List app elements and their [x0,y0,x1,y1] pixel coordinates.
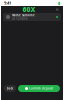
staticText: ▮ [58,1,60,5]
staticText: 60X [22,5,35,14]
staticText: 9:41 [4,0,11,6]
button[interactable]: Back [4,85,16,92]
button[interactable]: Confirm deposit [18,85,60,92]
staticText: id 123456 [12,17,28,20]
button[interactable]: Close [54,6,60,12]
staticText: Back [6,87,13,90]
staticText: Confirm deposit [29,87,53,90]
staticText: ✕ [55,7,58,12]
staticText: Name Surname [12,13,35,17]
